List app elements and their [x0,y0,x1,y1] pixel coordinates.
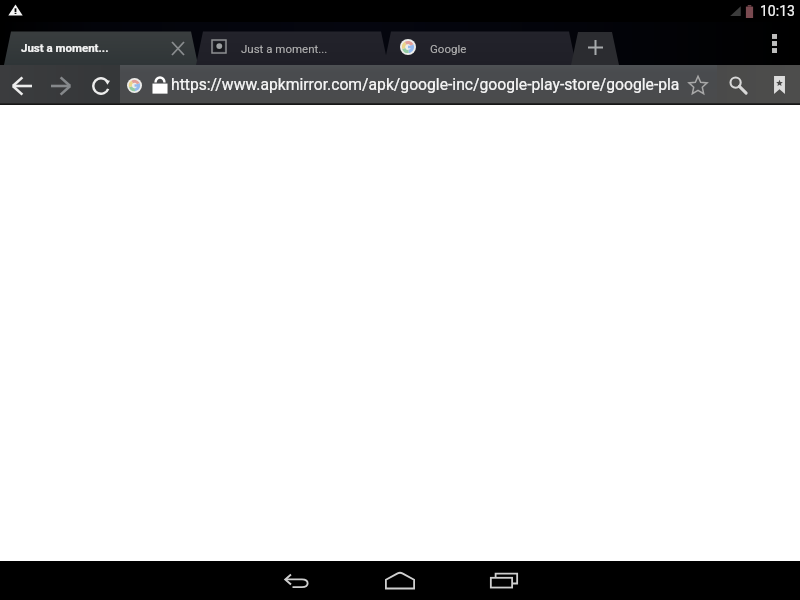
staticText: Just a moment... [241,42,328,55]
button[interactable]: Forward [44,69,77,102]
button[interactable]: Bookmark [682,69,714,101]
button[interactable]: Recents [452,561,556,600]
button[interactable]: More options [758,26,790,61]
button[interactable]: Close tab [165,35,191,61]
staticText: https://www.apkmirror.com/apk/google-inc… [171,75,680,93]
button[interactable]: Reload [84,69,117,102]
staticText: Google [430,42,467,55]
button[interactable]: New tab [571,30,619,65]
button[interactable]: Home [348,561,452,600]
staticText: Just a moment... [21,41,109,54]
staticText: 10:13 [760,3,795,19]
button[interactable]: Back [5,69,38,102]
button[interactable]: Back [244,561,348,600]
button[interactable]: Search [722,69,754,101]
button[interactable]: Google [384,30,576,65]
button[interactable]: Just a moment... [4,30,198,65]
button[interactable]: Bookmarks [763,69,795,101]
button[interactable]: https://www.apkmirror.com/apk/google-inc… [120,65,717,105]
button[interactable]: Just a moment... [196,30,388,65]
